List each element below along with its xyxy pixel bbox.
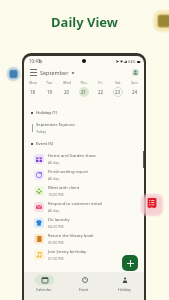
staticText: Event (5)	[36, 141, 54, 147]
button[interactable]: Holiday	[104, 272, 144, 300]
button[interactable]: Sat	[109, 78, 126, 98]
staticText: Tue	[46, 80, 53, 85]
staticText: Return the library book	[48, 233, 94, 239]
staticText: 20	[64, 89, 70, 95]
button[interactable]: Add event	[122, 255, 138, 271]
staticText: Calendar	[36, 287, 52, 292]
staticText: 05:00 PM	[48, 240, 64, 245]
button[interactable]: Do laundry	[34, 215, 138, 231]
button[interactable]: Account	[130, 67, 140, 77]
staticText: 22	[98, 89, 104, 95]
button[interactable]: Event	[64, 272, 104, 300]
staticText: All day	[48, 160, 60, 165]
staticText: Today	[36, 129, 46, 134]
button[interactable]: Respond to customer email	[34, 199, 138, 215]
staticText: All day	[48, 176, 60, 181]
button[interactable]: September Equinox	[32, 122, 138, 134]
staticText: Holiday (1)	[36, 110, 58, 116]
staticText: 18	[30, 89, 36, 95]
staticText: 10:45	[29, 58, 41, 64]
staticText: Fri	[98, 80, 103, 85]
button[interactable]: Sun	[126, 78, 143, 98]
staticText: Sat	[115, 80, 121, 85]
staticText: Meet with client	[48, 185, 80, 191]
staticText: September Equinox	[36, 122, 75, 128]
staticText: Do laundry	[48, 217, 70, 223]
button[interactable]: Calendar	[24, 272, 64, 300]
staticText: Wed	[63, 80, 71, 85]
staticText: 23	[115, 89, 121, 95]
button[interactable]: Meet with client	[34, 183, 138, 199]
staticText: Holiday	[118, 287, 131, 292]
staticText: All day	[48, 208, 60, 213]
staticText: 10:00 PM	[48, 192, 64, 197]
button[interactable]: Tue	[41, 78, 58, 98]
button[interactable]: Menu	[28, 67, 38, 77]
staticText: 19	[47, 89, 53, 95]
button[interactable]: Thu	[75, 78, 92, 98]
staticText: Respond to customer email	[48, 201, 102, 207]
button[interactable]: Join Jimmy birthday	[34, 247, 138, 263]
staticText: Event	[79, 287, 89, 292]
staticText: Join Jimmy birthday	[48, 249, 87, 255]
button[interactable]: Home and Garden show	[34, 151, 138, 167]
button[interactable]: September	[40, 69, 75, 76]
button[interactable]: Finish writing report	[34, 167, 138, 183]
button[interactable]: Fri	[92, 78, 109, 98]
staticText: 21	[81, 89, 87, 95]
staticText: Daily View	[0, 13, 169, 31]
staticText: 04:20 PM	[48, 224, 64, 229]
staticText: September	[40, 69, 69, 76]
staticText: Thu	[80, 80, 87, 85]
staticText: 07:30 PM	[48, 256, 64, 261]
staticText: Mon	[29, 80, 38, 85]
staticText: 64%	[128, 59, 136, 64]
staticText: Home and Garden show	[48, 153, 96, 159]
staticText: Sun	[131, 80, 138, 85]
button[interactable]: Mon	[25, 78, 41, 98]
staticText: 24	[132, 89, 138, 95]
button[interactable]: Wed	[58, 78, 75, 98]
staticText: Finish writing report	[48, 169, 88, 175]
button[interactable]: Return the library book	[34, 231, 138, 247]
